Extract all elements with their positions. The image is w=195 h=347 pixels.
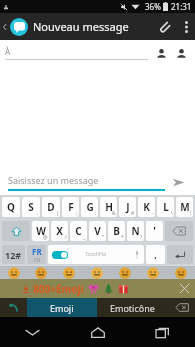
button[interactable]: N: [127, 221, 144, 241]
staticText: S: [28, 200, 34, 214]
staticText: &: [112, 210, 116, 217]
staticText: /: [65, 234, 67, 241]
button[interactable]: [27, 266, 55, 279]
button[interactable]: [167, 266, 195, 279]
staticText: K: [143, 200, 150, 214]
button[interactable]: Shift: [2, 221, 30, 241]
other: Shift: [11, 226, 22, 237]
button[interactable]: Emoticône: [97, 298, 168, 317]
staticText: \: [171, 210, 173, 217]
button[interactable]: Backspace: [165, 221, 193, 241]
button[interactable]: Back: [0, 298, 27, 317]
staticText: Nouveau message: [33, 19, 129, 34]
staticText: Emoji: [50, 302, 74, 314]
staticText: 800+Emoji: [33, 282, 84, 296]
button[interactable]: ': [146, 221, 163, 241]
button[interactable]: J: [119, 197, 136, 217]
staticText: .: [154, 248, 157, 262]
button[interactable]: .: [146, 245, 165, 264]
button[interactable]: Backspace: [168, 298, 195, 317]
staticText: EN: [34, 257, 41, 264]
button[interactable]: TouchPal: [48, 245, 144, 264]
button[interactable]: C: [70, 221, 87, 241]
button[interactable]: Enter: [167, 245, 193, 264]
staticText: ;: [76, 210, 78, 217]
staticText: M: [180, 200, 190, 214]
button[interactable]: Q: [2, 197, 20, 217]
button[interactable]: [139, 266, 167, 279]
staticText: @: [43, 234, 48, 241]
button[interactable]: [55, 266, 83, 279]
staticText: ?: [140, 234, 143, 241]
button[interactable]: FR: [27, 245, 46, 264]
staticText: C: [75, 224, 82, 238]
button[interactable]: More options: [177, 13, 195, 40]
staticText: V: [94, 224, 101, 238]
staticText: !: [190, 210, 192, 217]
staticText: L: [163, 200, 169, 214]
button[interactable]: Send: [165, 169, 191, 195]
staticText: ,: [17, 210, 19, 217]
staticText: N: [131, 224, 140, 238]
staticText: H: [105, 200, 113, 214]
button[interactable]: 800+Emoji: [0, 279, 195, 298]
staticText: F: [68, 200, 74, 214]
button[interactable]: D: [42, 197, 60, 217]
other: Enter: [174, 249, 186, 261]
other: Backspace: [172, 226, 186, 236]
staticText: (: [57, 210, 59, 217]
button[interactable]: [83, 266, 111, 279]
staticText: _: [83, 234, 86, 241]
button[interactable]: L: [157, 197, 174, 217]
staticText: D: [47, 200, 55, 214]
staticText: J: [126, 200, 130, 214]
staticText: 36%: [145, 1, 161, 12]
staticText: Q: [7, 200, 15, 214]
staticText: .: [37, 210, 39, 217]
button[interactable]: X: [51, 221, 68, 241]
staticText: FR: [32, 246, 42, 257]
button[interactable]: G: [81, 197, 98, 217]
staticText: :: [95, 210, 97, 217]
button[interactable]: Emoji: [27, 298, 97, 317]
button[interactable]: F: [62, 197, 79, 217]
staticText: B: [113, 224, 120, 238]
staticText: W: [36, 224, 46, 238]
staticText: ": [102, 234, 105, 241]
button[interactable]: 12#: [2, 245, 25, 264]
staticText: TouchPal: [85, 251, 107, 258]
staticText: *: [121, 234, 124, 241]
button[interactable]: H: [100, 197, 117, 217]
button[interactable]: [111, 266, 139, 279]
staticText: Emoticône: [110, 302, 155, 314]
button[interactable]: Home: [65, 317, 130, 347]
staticText: -: [152, 210, 154, 217]
button[interactable]: Contacts: [174, 46, 188, 60]
button[interactable]: Recent apps: [130, 317, 195, 347]
button[interactable]: Add recipient: [154, 46, 168, 60]
button[interactable]: [0, 266, 27, 279]
button[interactable]: Back: [0, 13, 10, 40]
staticText: 21:31: [171, 1, 192, 12]
staticText: À: [5, 46, 11, 57]
button[interactable]: S: [22, 197, 40, 217]
staticText: G: [86, 200, 94, 214]
button[interactable]: Close: [173, 279, 195, 298]
button[interactable]: M: [176, 197, 193, 217]
staticText: 12#: [5, 249, 22, 261]
button[interactable]: Hide keyboard: [0, 317, 65, 347]
button[interactable]: B: [108, 221, 125, 241]
button[interactable]: V: [89, 221, 106, 241]
button[interactable]: W: [32, 221, 49, 241]
staticText: Saisissez un message: [8, 174, 99, 186]
staticText: ': [153, 224, 156, 238]
button[interactable]: Attach file: [151, 13, 177, 40]
staticText: X: [56, 224, 63, 238]
button[interactable]: K: [138, 197, 155, 217]
staticText: #: [131, 210, 135, 217]
